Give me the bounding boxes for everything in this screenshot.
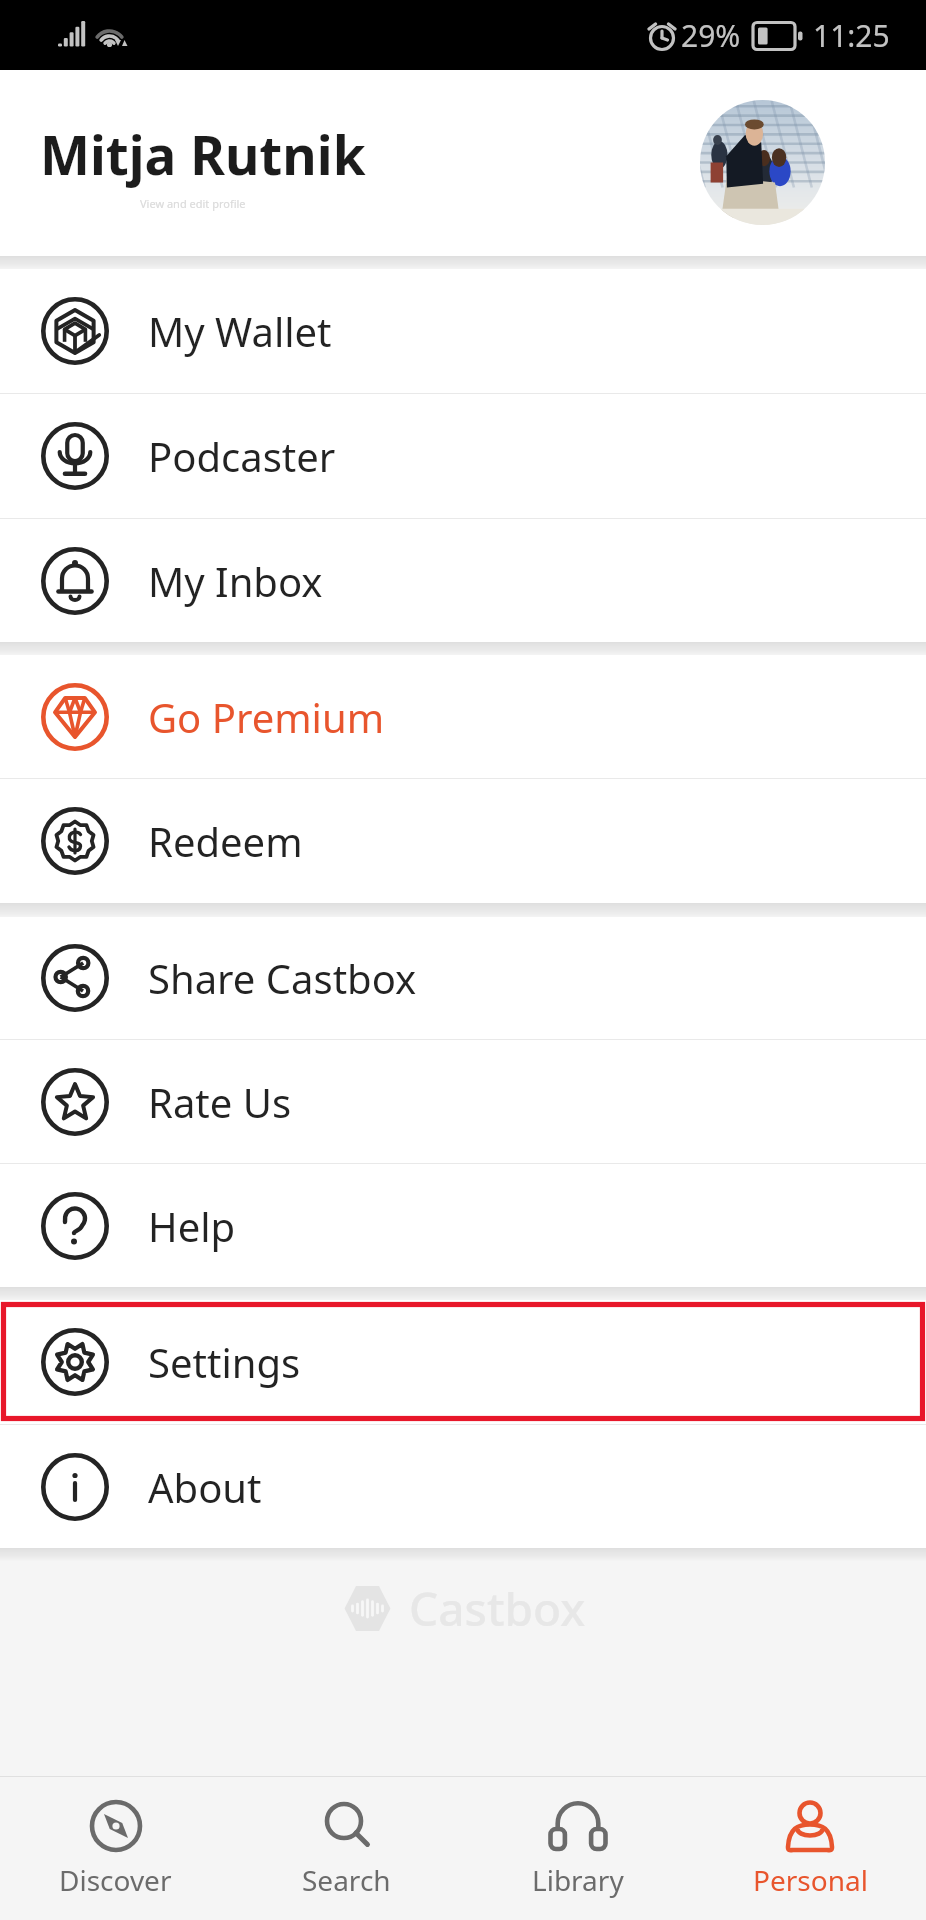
staticText: View and edit profile (140, 196, 246, 211)
staticText: Search (302, 1861, 391, 1899)
staticText: Mitja Rutnik (40, 118, 366, 190)
button[interactable]: Rate Us (0, 1040, 926, 1163)
button[interactable]: Search (231, 1777, 462, 1920)
staticText: 11:25 (813, 15, 890, 56)
button[interactable]: Podcaster (0, 394, 926, 518)
staticText: 29% (681, 15, 741, 56)
staticText: Rate Us (148, 1075, 292, 1129)
button[interactable]: Library (462, 1777, 694, 1920)
staticText: Redeem (148, 814, 303, 868)
staticText: About (148, 1460, 262, 1514)
button[interactable]: Discover (0, 1777, 231, 1920)
staticText: Personal (753, 1861, 868, 1899)
staticText: Castbox (409, 1577, 586, 1640)
staticText: Settings (148, 1335, 301, 1389)
button[interactable]: Profile photo (700, 100, 825, 225)
button[interactable]: My Wallet (0, 269, 926, 393)
staticText: Help (148, 1199, 236, 1253)
button[interactable]: Share Castbox (0, 917, 926, 1039)
button[interactable]: Mitja Rutnik (0, 70, 926, 256)
button[interactable]: About (0, 1425, 926, 1548)
staticText: Go Premium (148, 690, 385, 744)
staticText: Podcaster (148, 429, 336, 483)
button[interactable]: Personal (694, 1777, 926, 1920)
staticText: Library (532, 1861, 624, 1899)
button[interactable]: Redeem (0, 779, 926, 903)
staticText: Discover (59, 1861, 172, 1899)
button[interactable]: Go Premium (0, 655, 926, 778)
button[interactable]: Help (0, 1164, 926, 1287)
staticText: Share Castbox (148, 951, 417, 1005)
button[interactable]: Settings (0, 1300, 926, 1424)
button[interactable]: My Inbox (0, 519, 926, 642)
staticText: My Inbox (148, 554, 323, 608)
staticText: My Wallet (148, 304, 332, 358)
